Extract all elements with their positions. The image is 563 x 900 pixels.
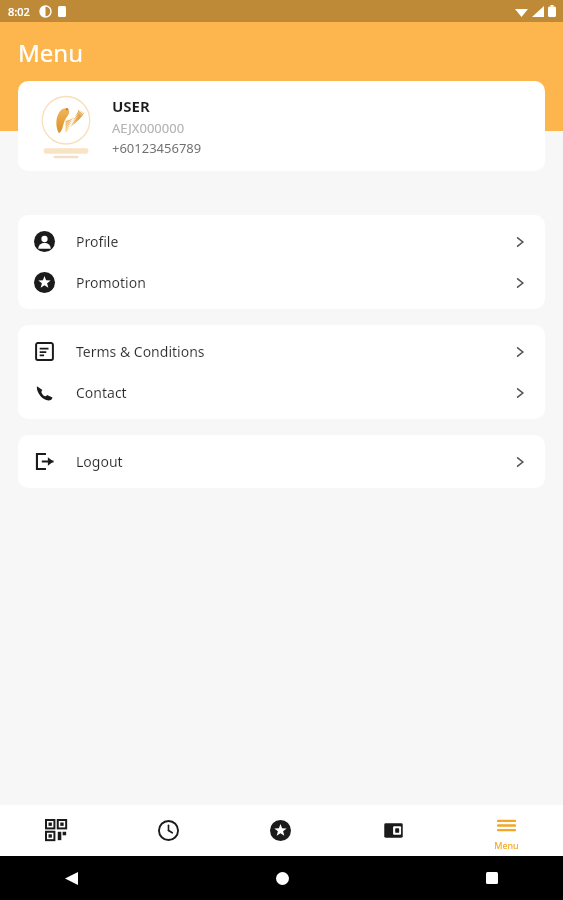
staticText: +60123456789: [112, 139, 202, 157]
button[interactable]: Recent apps: [477, 863, 507, 893]
staticText: Terms & Conditions: [76, 342, 513, 361]
button[interactable]: Wallet: [337, 805, 450, 856]
button[interactable]: Rewards: [224, 805, 337, 856]
button[interactable]: Menu: [450, 805, 563, 856]
staticText: USER: [112, 96, 150, 116]
button[interactable]: Promotion: [18, 262, 545, 303]
button[interactable]: USER: [18, 81, 545, 171]
staticText: Menu: [494, 839, 519, 851]
staticText: Promotion: [76, 273, 513, 292]
button[interactable]: Logout: [18, 441, 545, 482]
button[interactable]: Contact: [18, 372, 545, 413]
button[interactable]: QR code: [0, 805, 112, 856]
button[interactable]: Back: [56, 863, 86, 893]
button[interactable]: Profile: [18, 221, 545, 262]
staticText: 8:02: [8, 4, 30, 19]
button[interactable]: Home: [267, 863, 297, 893]
button[interactable]: Terms & Conditions: [18, 331, 545, 372]
staticText: AEJX000000: [112, 119, 185, 137]
staticText: Profile: [76, 232, 513, 251]
button[interactable]: History: [112, 805, 224, 856]
staticText: Logout: [76, 452, 513, 471]
staticText: Menu: [18, 36, 83, 69]
staticText: Contact: [76, 383, 513, 402]
